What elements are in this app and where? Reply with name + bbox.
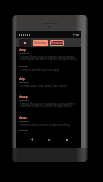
staticText: to form a drop of water inside something bbox=[20, 123, 79, 127]
staticText: dross bbox=[19, 116, 27, 120]
button[interactable]: Back bbox=[29, 137, 34, 142]
button[interactable]: drop bbox=[16, 48, 81, 54]
staticText: to make water drop slowly from above bbox=[20, 84, 79, 88]
button[interactable]: Thesaurus bbox=[50, 40, 64, 46]
staticText: Definition bbox=[19, 120, 30, 123]
staticText: drop bbox=[19, 48, 26, 52]
button[interactable]: Recent apps bbox=[64, 137, 69, 142]
staticText: Dictionary bbox=[34, 41, 47, 45]
staticText: drip bbox=[19, 77, 25, 81]
button[interactable]: Home bbox=[46, 137, 51, 142]
button[interactable]: dross bbox=[16, 116, 81, 120]
staticText: Example bbox=[19, 65, 28, 68]
button[interactable]: drip bbox=[16, 77, 81, 81]
staticText: Thesaurus bbox=[51, 41, 64, 45]
staticText: Definition bbox=[19, 81, 30, 84]
staticText: Definition bbox=[19, 52, 30, 55]
staticText: a drop of rain fell upon the page bbox=[20, 68, 79, 72]
button[interactable]: Menu bbox=[19, 39, 31, 47]
button[interactable]: droop bbox=[16, 95, 81, 101]
button[interactable]: Dictionary bbox=[33, 40, 48, 46]
staticText: Example bbox=[19, 129, 28, 132]
staticText: droop bbox=[19, 95, 28, 99]
staticText: Definition bbox=[19, 99, 30, 102]
staticText: a shape like a circle on a white surface… bbox=[20, 55, 79, 61]
staticText: a shape like a circle on a white surface… bbox=[20, 102, 79, 108]
